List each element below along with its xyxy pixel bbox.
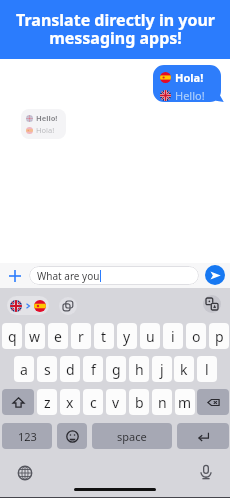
staticText: Translate directly in your messaging app… bbox=[16, 9, 215, 48]
button[interactable]: f bbox=[83, 356, 103, 382]
button[interactable]: Emoji bbox=[57, 423, 87, 449]
staticText: v bbox=[112, 393, 120, 412]
button[interactable] bbox=[7, 296, 49, 315]
staticText: Hello! bbox=[175, 88, 205, 102]
staticText: l bbox=[205, 360, 209, 379]
button[interactable]: Dictate bbox=[197, 463, 215, 481]
staticText: z bbox=[44, 393, 51, 412]
button[interactable]: h bbox=[129, 356, 149, 382]
staticText: g bbox=[112, 360, 121, 379]
button[interactable]: a bbox=[14, 356, 34, 382]
button[interactable]: n bbox=[152, 389, 172, 415]
staticText: y bbox=[123, 327, 131, 346]
staticText: t bbox=[101, 327, 107, 346]
button[interactable]: b bbox=[129, 389, 149, 415]
button[interactable]: i bbox=[163, 323, 183, 349]
staticText: j bbox=[160, 360, 164, 379]
button[interactable]: r bbox=[71, 323, 91, 349]
button[interactable]: j bbox=[152, 356, 172, 382]
staticText: a bbox=[20, 360, 28, 379]
button[interactable]: w bbox=[25, 323, 45, 349]
button[interactable]: space bbox=[92, 423, 172, 449]
staticText: f bbox=[91, 360, 96, 379]
staticText: 123 bbox=[18, 429, 37, 444]
button[interactable]: y bbox=[117, 323, 137, 349]
staticText: space bbox=[117, 429, 147, 444]
staticText: r bbox=[78, 327, 84, 346]
button[interactable]: Translate bbox=[203, 295, 221, 313]
button[interactable]: m bbox=[175, 389, 195, 415]
staticText: p bbox=[215, 327, 224, 346]
button[interactable]: d bbox=[60, 356, 80, 382]
button[interactable]: v bbox=[106, 389, 126, 415]
staticText: Hola! bbox=[175, 70, 204, 85]
button[interactable]: u bbox=[140, 323, 160, 349]
staticText: Hello! bbox=[36, 113, 58, 123]
staticText: d bbox=[66, 360, 75, 379]
staticText: x bbox=[66, 393, 74, 412]
staticText: u bbox=[146, 327, 155, 346]
staticText: n bbox=[158, 393, 167, 412]
button[interactable]: z bbox=[37, 389, 57, 415]
button[interactable]: Return bbox=[177, 423, 229, 449]
button[interactable]: e bbox=[48, 323, 68, 349]
button[interactable]: 123 bbox=[2, 423, 52, 449]
staticText: m bbox=[178, 393, 192, 412]
staticText: s bbox=[44, 360, 51, 379]
button[interactable]: x bbox=[60, 389, 80, 415]
staticText: o bbox=[192, 327, 201, 346]
staticText: What are you bbox=[37, 269, 100, 283]
button[interactable]: Copy bbox=[59, 297, 77, 315]
button[interactable]: Backspace bbox=[197, 389, 229, 415]
button[interactable]: Translate directly in your messaging app… bbox=[0, 0, 230, 59]
staticText: w bbox=[29, 327, 41, 346]
staticText: i bbox=[171, 327, 175, 346]
button[interactable]: s bbox=[37, 356, 57, 382]
button[interactable]: k bbox=[174, 356, 194, 382]
staticText: c bbox=[90, 393, 97, 412]
button[interactable]: p bbox=[209, 323, 229, 349]
button[interactable]: c bbox=[83, 389, 103, 415]
button[interactable]: Add attachment bbox=[9, 270, 21, 282]
staticText: q bbox=[8, 327, 17, 346]
staticText: Hola! bbox=[36, 125, 55, 135]
staticText: e bbox=[54, 327, 62, 346]
button[interactable]: l bbox=[197, 356, 217, 382]
button[interactable]: Shift bbox=[2, 389, 34, 415]
button[interactable]: Change keyboard language bbox=[17, 465, 33, 481]
button[interactable]: g bbox=[106, 356, 126, 382]
staticText: h bbox=[135, 360, 144, 379]
button[interactable]: o bbox=[186, 323, 206, 349]
staticText: k bbox=[180, 360, 188, 379]
button[interactable]: t bbox=[94, 323, 114, 349]
staticText: b bbox=[135, 393, 144, 412]
button[interactable]: q bbox=[2, 323, 22, 349]
button[interactable]: Send bbox=[205, 265, 225, 285]
button[interactable]: What are you bbox=[29, 266, 199, 285]
